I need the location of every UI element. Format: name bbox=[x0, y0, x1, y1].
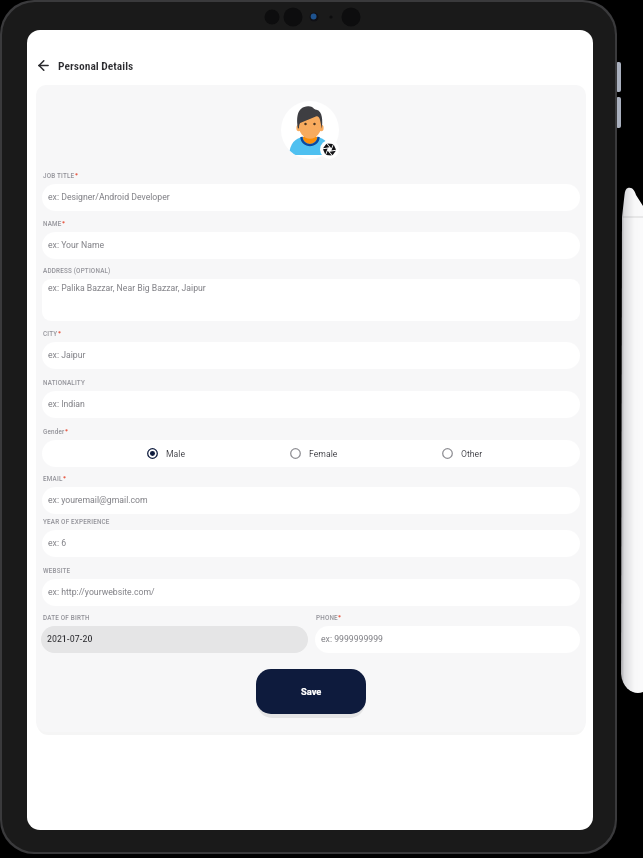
staticText: EMAIL bbox=[43, 475, 63, 482]
staticText: Gender bbox=[43, 428, 65, 435]
staticText: Save bbox=[301, 686, 322, 697]
staticText: CITY bbox=[43, 330, 58, 337]
staticText: Other bbox=[461, 449, 483, 459]
button[interactable]: Back bbox=[34, 56, 52, 74]
staticText: ex: youremail@gmail.com bbox=[48, 495, 148, 505]
staticText: ADDRESS (OPTIONAL) bbox=[43, 267, 111, 274]
staticText: YEAR OF EXPERIENCE bbox=[43, 518, 110, 525]
staticText: Male bbox=[166, 449, 186, 459]
button[interactable]: ex: Designer/Android Developer bbox=[42, 184, 580, 211]
staticText: NAME bbox=[43, 220, 62, 227]
button[interactable]: ex: 9999999999 bbox=[315, 626, 580, 653]
button[interactable]: Female bbox=[290, 440, 338, 467]
button[interactable]: Save bbox=[256, 669, 366, 714]
staticText: 2021-07-20 bbox=[47, 634, 93, 644]
button[interactable]: ex: 6 bbox=[42, 530, 580, 557]
staticText: ex: 6 bbox=[48, 538, 67, 548]
button[interactable]: ex: Indian bbox=[42, 391, 580, 418]
button[interactable]: Male bbox=[147, 440, 186, 467]
staticText: ex: Indian bbox=[48, 399, 85, 409]
staticText: ex: 9999999999 bbox=[321, 634, 384, 644]
staticText: JOB TITLE bbox=[43, 172, 75, 179]
staticText: ex: Palika Bazzar, Near Big Bazzar, Jaip… bbox=[48, 283, 206, 293]
staticText: ex: Designer/Android Developer bbox=[48, 192, 170, 202]
button[interactable]: 2021-07-20 bbox=[41, 626, 308, 653]
staticText: DATE OF BIRTH bbox=[43, 614, 90, 621]
button[interactable]: ex: Your Name bbox=[42, 232, 580, 259]
button[interactable]: Other bbox=[442, 440, 483, 467]
staticText: WEBSITE bbox=[43, 567, 71, 574]
button[interactable]: ex: Jaipur bbox=[42, 342, 580, 369]
staticText: NATIONALITY bbox=[43, 379, 85, 386]
button[interactable]: Change profile photo bbox=[320, 140, 339, 159]
staticText: ex: Your Name bbox=[48, 240, 105, 250]
staticText: PHONE bbox=[316, 614, 338, 621]
button[interactable]: ex: Palika Bazzar, Near Big Bazzar, Jaip… bbox=[42, 279, 580, 321]
staticText: ex: Jaipur bbox=[48, 350, 86, 360]
button[interactable]: ex: youremail@gmail.com bbox=[42, 487, 580, 514]
button[interactable]: ex: http://yourwebsite.com/ bbox=[42, 579, 580, 606]
staticText: Personal Details bbox=[58, 59, 134, 72]
staticText: ex: http://yourwebsite.com/ bbox=[48, 587, 155, 597]
staticText: Female bbox=[309, 449, 338, 459]
